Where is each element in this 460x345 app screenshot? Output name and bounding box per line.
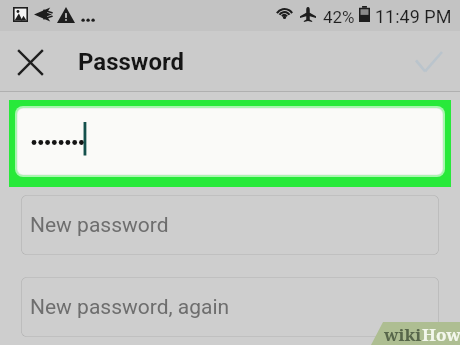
staticText: 11:49 PM — [375, 6, 452, 27]
button[interactable]: New password, again — [21, 277, 439, 337]
button[interactable]: Close — [7, 39, 53, 85]
staticText: New password, again — [30, 295, 230, 320]
button[interactable] — [17, 108, 443, 175]
staticText: New password — [30, 213, 169, 238]
staticText: wiki — [384, 323, 422, 345]
button[interactable]: Confirm — [406, 39, 452, 85]
staticText: Password — [78, 48, 185, 76]
staticText: 42% — [323, 7, 355, 27]
button[interactable]: New password — [21, 195, 439, 255]
staticText: How — [422, 323, 460, 345]
